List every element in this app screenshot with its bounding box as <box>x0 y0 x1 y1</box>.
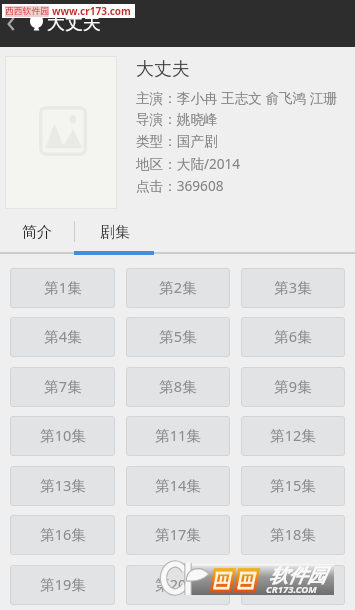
staticText: 剧集 <box>100 223 130 242</box>
staticText: 第16集 <box>40 524 86 544</box>
staticText: 第7集 <box>44 376 82 396</box>
button[interactable]: 第3集 <box>241 268 345 308</box>
button[interactable]: 第11集 <box>126 416 230 456</box>
button[interactable]: 剧集 <box>75 209 154 254</box>
button[interactable]: 简介 <box>0 209 74 254</box>
staticText: 第6集 <box>274 326 312 346</box>
staticText: 第2集 <box>159 277 197 297</box>
button[interactable]: 第19集 <box>10 565 115 605</box>
button[interactable]: 第16集 <box>10 515 115 555</box>
staticText: 第11集 <box>155 425 201 445</box>
staticText: 导演：姚晓峰 <box>136 111 218 128</box>
staticText: 简介 <box>22 223 52 242</box>
button[interactable]: 第14集 <box>126 466 230 506</box>
staticText: 第8集 <box>159 376 197 396</box>
button[interactable]: 第9集 <box>241 367 345 407</box>
button[interactable]: 第15集 <box>241 466 345 506</box>
staticText: 主演：李小冉 王志文 俞飞鸿 江珊 <box>136 88 337 107</box>
staticText: 第17集 <box>155 524 201 544</box>
staticText: 第3集 <box>274 277 312 297</box>
staticText: 第14集 <box>155 475 201 495</box>
staticText: 大丈夫 <box>47 12 101 35</box>
button[interactable]: 第13集 <box>10 466 115 506</box>
staticText: 第9集 <box>274 376 312 396</box>
button[interactable]: 第4集 <box>10 317 115 357</box>
button[interactable]: 第10集 <box>10 416 115 456</box>
staticText: 第21集 <box>270 574 316 594</box>
staticText: 第15集 <box>270 475 316 495</box>
staticText: CR173.COM <box>266 583 317 596</box>
staticText: 第1集 <box>44 277 82 297</box>
button[interactable]: 第17集 <box>126 515 230 555</box>
staticText: 第12集 <box>270 425 316 445</box>
button[interactable]: Back <box>0 0 26 47</box>
button[interactable]: 第8集 <box>126 367 230 407</box>
staticText: 软件园 <box>269 564 326 588</box>
staticText: 大丈夫 <box>136 58 190 81</box>
staticText: 第4集 <box>44 326 82 346</box>
staticText: 第10集 <box>40 425 86 445</box>
staticText: 类型：国产剧 <box>136 133 218 150</box>
button[interactable]: 第2集 <box>126 268 230 308</box>
staticText: 第5集 <box>159 326 197 346</box>
button[interactable]: 第21集 <box>241 565 345 605</box>
button[interactable]: 第5集 <box>126 317 230 357</box>
staticText: 第13集 <box>40 475 86 495</box>
button[interactable]: 第18集 <box>241 515 345 555</box>
staticText: 第20集 <box>155 574 201 594</box>
button[interactable]: 第7集 <box>10 367 115 407</box>
staticText: 第18集 <box>270 524 316 544</box>
button[interactable]: 第12集 <box>241 416 345 456</box>
staticText: 点击：369608 <box>136 176 224 195</box>
button[interactable]: 第1集 <box>10 268 115 308</box>
staticText: www.cr173.com <box>52 4 131 18</box>
staticText: 西西软件园 <box>5 6 49 17</box>
button[interactable]: 第20集 <box>126 565 230 605</box>
staticText: 地区：大陆/2014 <box>136 154 241 173</box>
button[interactable]: 第6集 <box>241 317 345 357</box>
staticText: 第19集 <box>40 574 86 594</box>
